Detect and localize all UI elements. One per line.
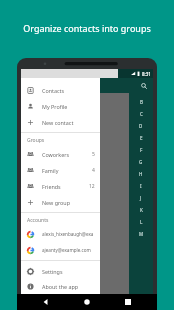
staticText: Coworkers [42, 151, 70, 158]
staticText: K [140, 207, 143, 213]
staticText: Accounts [27, 217, 49, 224]
button[interactable]: ajeanty@example.com [21, 242, 100, 258]
button[interactable]: Friends [21, 178, 100, 194]
staticText: M [139, 231, 144, 237]
staticText: ajeanty@example.com [42, 247, 91, 253]
button[interactable]: Recent apps [121, 295, 135, 309]
staticText: Organize contacts into groups [23, 22, 151, 34]
button[interactable]: alexis_hixenbaugh@example [21, 226, 100, 242]
staticText: Settings [42, 268, 63, 275]
staticText: 12 [89, 183, 95, 190]
staticText: New group [42, 199, 71, 206]
button[interactable]: Family [21, 162, 100, 178]
staticText: My Profile [42, 103, 68, 110]
staticText: 4 [92, 167, 95, 174]
staticText: Groups [27, 137, 45, 144]
staticText: G [139, 159, 143, 165]
staticText: alexis_hixenbaugh@example [42, 231, 95, 237]
staticText: Friends [42, 183, 61, 190]
staticText: D [139, 123, 143, 129]
staticText: A [140, 87, 143, 93]
button[interactable]: New group [21, 194, 100, 210]
staticText: Contacts [42, 87, 65, 94]
button[interactable]: My Profile [21, 98, 100, 114]
staticText: C [140, 111, 143, 117]
staticText: I [140, 183, 142, 189]
button[interactable]: Back [39, 295, 53, 309]
staticText: About the app [42, 283, 79, 290]
button[interactable]: Search [139, 81, 148, 90]
staticText: H [139, 171, 143, 177]
staticText: 5 [92, 151, 95, 158]
staticText: Family [42, 167, 59, 174]
button[interactable]: Home [80, 295, 94, 309]
staticText: New contact [42, 119, 74, 126]
button[interactable]: About the app [21, 279, 100, 294]
staticText: 8:31 [142, 71, 151, 77]
staticText: E [140, 135, 143, 141]
button[interactable]: Settings [21, 263, 100, 279]
staticText: J [140, 195, 142, 201]
button[interactable]: New contact [21, 114, 100, 130]
staticText: L [140, 219, 143, 225]
button[interactable]: Coworkers [21, 146, 100, 162]
staticText: B [140, 99, 143, 105]
staticText: F [140, 147, 143, 153]
button[interactable]: Contacts [21, 82, 100, 98]
